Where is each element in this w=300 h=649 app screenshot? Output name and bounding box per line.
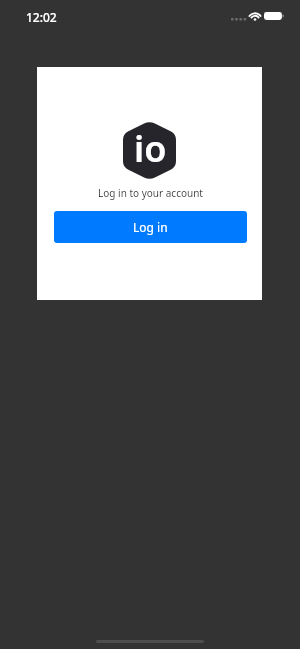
other: io logo xyxy=(123,121,176,180)
staticText: 12:02 xyxy=(26,9,57,25)
staticText: io xyxy=(134,124,167,173)
other: Wi-Fi xyxy=(249,11,261,21)
staticText: Log in xyxy=(133,219,168,235)
button[interactable]: Log in xyxy=(54,211,247,243)
other: Battery full xyxy=(264,12,285,21)
staticText: Log in to your account xyxy=(98,186,203,200)
other: Cellular signal xyxy=(231,17,245,22)
